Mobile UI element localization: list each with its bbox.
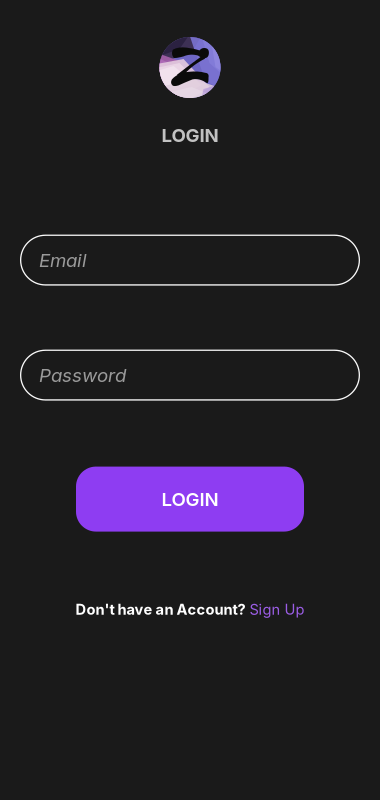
button[interactable]: Sign Up (249, 601, 304, 618)
staticText: LOGIN (161, 124, 218, 147)
button[interactable]: Password (20, 350, 360, 401)
staticText: Password (39, 364, 126, 386)
button[interactable]: Email (20, 235, 360, 286)
button[interactable]: LOGIN (76, 467, 304, 532)
staticText: LOGIN (161, 488, 218, 510)
staticText: Don't have an Account? (75, 601, 245, 618)
staticText: Email (39, 249, 87, 271)
staticText: Sign Up (249, 601, 304, 618)
